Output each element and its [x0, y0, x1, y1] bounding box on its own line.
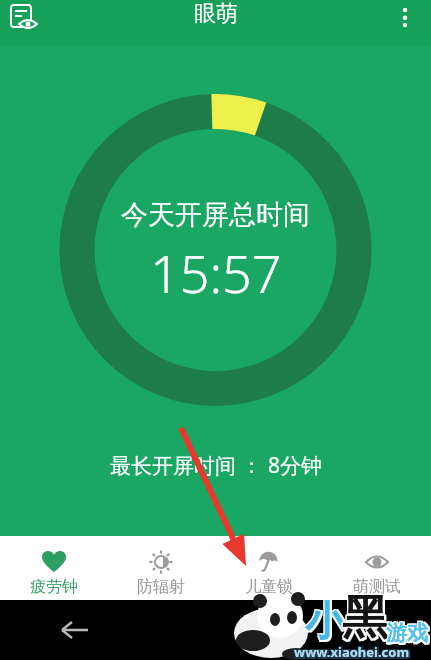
- staticText: www.xiaohei.com: [293, 645, 409, 660]
- staticText: www.xiaohei.com: [294, 643, 410, 660]
- staticText: 萌测试: [353, 577, 401, 597]
- button[interactable]: 疲劳钟: [0, 536, 107, 600]
- staticText: 游戏: [385, 619, 427, 645]
- staticText: 游戏: [386, 620, 428, 646]
- staticText: 眼萌: [194, 0, 238, 28]
- button[interactable]: 儿童锁: [215, 536, 323, 600]
- staticText: 黑: [344, 589, 390, 647]
- staticText: www.xiaohei.com: [294, 645, 410, 660]
- staticText: 黑: [342, 591, 388, 649]
- staticText: 游戏: [386, 622, 428, 648]
- staticText: 小: [305, 598, 345, 648]
- staticText: 小: [304, 596, 344, 646]
- staticText: 今天开屏总时间: [121, 198, 310, 232]
- staticText: 最长开屏时间 ： 8分钟: [110, 451, 322, 480]
- staticText: 游戏: [385, 620, 427, 646]
- staticText: www.xiaohei.com: [296, 643, 412, 660]
- staticText: 游戏: [388, 620, 430, 646]
- staticText: 黑: [341, 591, 387, 649]
- staticText: 黑: [342, 589, 388, 647]
- staticText: www.xiaohei.com: [293, 642, 409, 660]
- button[interactable]: 防辐射: [107, 536, 215, 600]
- staticText: 黑: [344, 591, 390, 649]
- staticText: 黑: [341, 589, 387, 647]
- staticText: 儿童锁: [245, 577, 293, 597]
- staticText: 游戏: [388, 622, 430, 648]
- staticText: 小: [307, 596, 347, 646]
- staticText: 游戏: [385, 622, 427, 648]
- staticText: 小: [305, 595, 345, 645]
- button[interactable]: 萌测试: [323, 536, 431, 600]
- staticText: 小: [304, 595, 344, 645]
- staticText: 黑: [342, 588, 388, 646]
- staticText: 小: [305, 596, 345, 646]
- staticText: 小: [307, 598, 347, 648]
- staticText: 防辐射: [137, 577, 185, 597]
- staticText: 小: [307, 595, 347, 645]
- button[interactable]: [10, 5, 38, 29]
- staticText: 黑: [341, 588, 387, 646]
- staticText: 小: [304, 598, 344, 648]
- staticText: www.xiaohei.com: [296, 642, 412, 660]
- staticText: www.xiaohei.com: [294, 642, 410, 660]
- staticText: 15:57: [150, 237, 282, 308]
- staticText: 黑: [344, 588, 390, 646]
- button[interactable]: [401, 6, 417, 22]
- staticText: www.xiaohei.com: [293, 643, 409, 660]
- staticText: 游戏: [388, 619, 430, 645]
- staticText: 疲劳钟: [30, 577, 78, 597]
- button[interactable]: [62, 621, 88, 639]
- staticText: 游戏: [386, 619, 428, 645]
- staticText: www.xiaohei.com: [296, 645, 412, 660]
